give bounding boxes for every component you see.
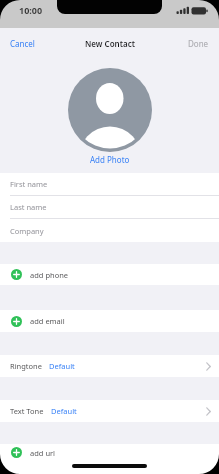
button[interactable]: Company	[0, 219, 219, 242]
button[interactable]	[68, 68, 152, 152]
button[interactable]: add email	[0, 310, 219, 332]
button[interactable]: Last name	[0, 196, 219, 218]
staticText: Ringtone	[10, 361, 42, 371]
button[interactable]: add phone	[0, 264, 219, 285]
staticText: add email	[30, 316, 65, 326]
staticText: 10:00	[19, 4, 43, 16]
staticText: add url	[30, 448, 56, 458]
staticText: First name	[10, 179, 48, 189]
staticText: Default	[49, 361, 75, 371]
staticText: add phone	[30, 270, 69, 280]
staticText: Default	[51, 406, 77, 416]
staticText: New Contact	[85, 38, 135, 49]
button[interactable]: Ringtone	[0, 355, 219, 377]
staticText: Last name	[10, 202, 47, 212]
button[interactable]: Cancel	[10, 38, 35, 49]
button[interactable]: First name	[0, 173, 219, 195]
button[interactable]: Add Photo	[90, 154, 130, 165]
staticText: Text Tone	[10, 406, 44, 416]
button[interactable]: Text Tone	[0, 400, 219, 422]
button[interactable]: add url	[11, 444, 219, 461]
staticText: Company	[10, 226, 44, 236]
button[interactable]: Done	[188, 38, 209, 49]
